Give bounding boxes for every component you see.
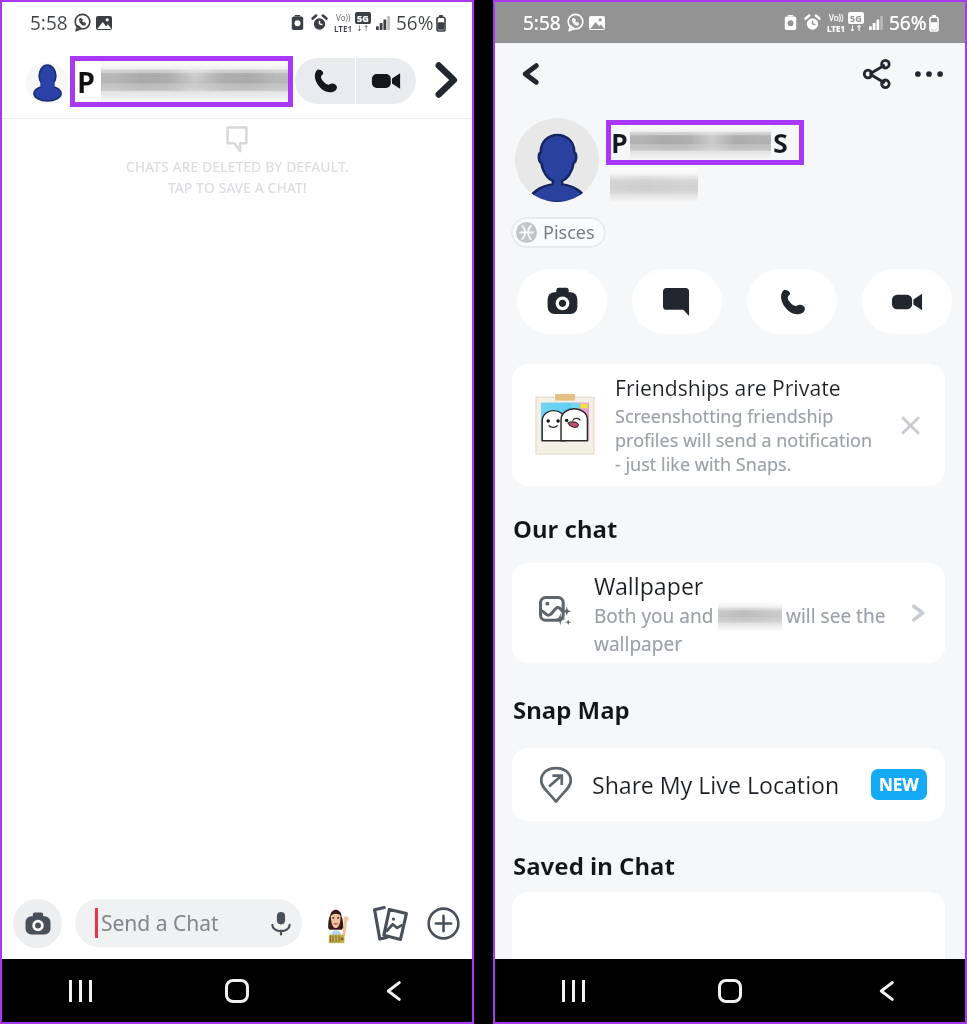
staticText: 5:58 [523, 10, 561, 36]
staticText: LTE1 [827, 23, 845, 34]
staticText: Wallpaper [594, 570, 704, 601]
staticText: Both you and [594, 603, 714, 629]
staticText: 56% [889, 10, 927, 36]
staticText: Vo)) [829, 12, 844, 23]
staticText: wallpaper [594, 631, 682, 657]
button[interactable]: Recent apps [2, 959, 158, 1022]
staticText: Send a Chat [101, 909, 219, 938]
button[interactable]: P [606, 120, 804, 165]
staticText: Screenshotting friendship profiles will … [615, 404, 873, 476]
button[interactable]: Camera [517, 269, 607, 334]
staticText: Snap Map [513, 693, 630, 726]
button[interactable]: Bitmoji [318, 902, 360, 944]
button[interactable]: Back [315, 959, 472, 1022]
button[interactable]: Video call [356, 58, 416, 104]
staticText: S [773, 124, 788, 161]
button[interactable]: Home [158, 959, 315, 1022]
staticText: Vo)) [336, 12, 351, 23]
button[interactable]: Profile picture [515, 118, 599, 202]
staticText: Share My Live Location [592, 769, 840, 800]
button[interactable]: Dismiss [888, 403, 932, 447]
staticText: 5G [850, 12, 862, 24]
button[interactable]: Home [651, 959, 808, 1022]
button[interactable]: More options [907, 52, 951, 96]
button[interactable]: Send a Chat [75, 899, 302, 947]
staticText: 5:58 [30, 10, 68, 36]
button[interactable]: More options [422, 902, 464, 944]
staticText: TAP TO SAVE A CHAT! [168, 179, 307, 197]
button[interactable]: P [70, 56, 293, 107]
button[interactable]: Friendships are Private [512, 364, 945, 486]
staticText: ↓↑ [849, 24, 863, 33]
button[interactable]: Voice call [747, 269, 837, 334]
button[interactable]: Pisces [511, 217, 606, 248]
button[interactable]: Back [511, 54, 551, 94]
staticText: 56% [396, 10, 434, 36]
staticText: P [77, 62, 96, 101]
button[interactable]: Share My Live Location [512, 748, 945, 821]
staticText: Saved in Chat [513, 849, 675, 882]
button[interactable]: Chat [632, 269, 722, 334]
staticText: CHATS ARE DELETED BY DEFAULT. [126, 158, 349, 176]
staticText: NEW [879, 773, 919, 796]
staticText: 5G [357, 12, 369, 24]
staticText: ↓↑ [356, 24, 370, 33]
button[interactable]: Camera [13, 899, 62, 948]
button[interactable]: Recent apps [495, 959, 651, 1022]
button[interactable]: Back [808, 959, 965, 1022]
button[interactable]: Wallpaper [512, 563, 945, 663]
button[interactable]: Stickers [369, 902, 411, 944]
staticText: Friendships are Private [615, 374, 841, 403]
staticText: Pisces [543, 220, 595, 245]
staticText: LTE1 [334, 23, 352, 34]
button[interactable]: Voice call [295, 58, 355, 104]
button[interactable]: Profile avatar [26, 62, 68, 104]
staticText: will see the [786, 603, 886, 629]
button[interactable]: Share [855, 52, 899, 96]
button[interactable]: Open chat [424, 58, 468, 102]
staticText: P [611, 124, 628, 161]
button[interactable]: Video call [862, 269, 952, 334]
staticText: Our chat [513, 512, 618, 545]
